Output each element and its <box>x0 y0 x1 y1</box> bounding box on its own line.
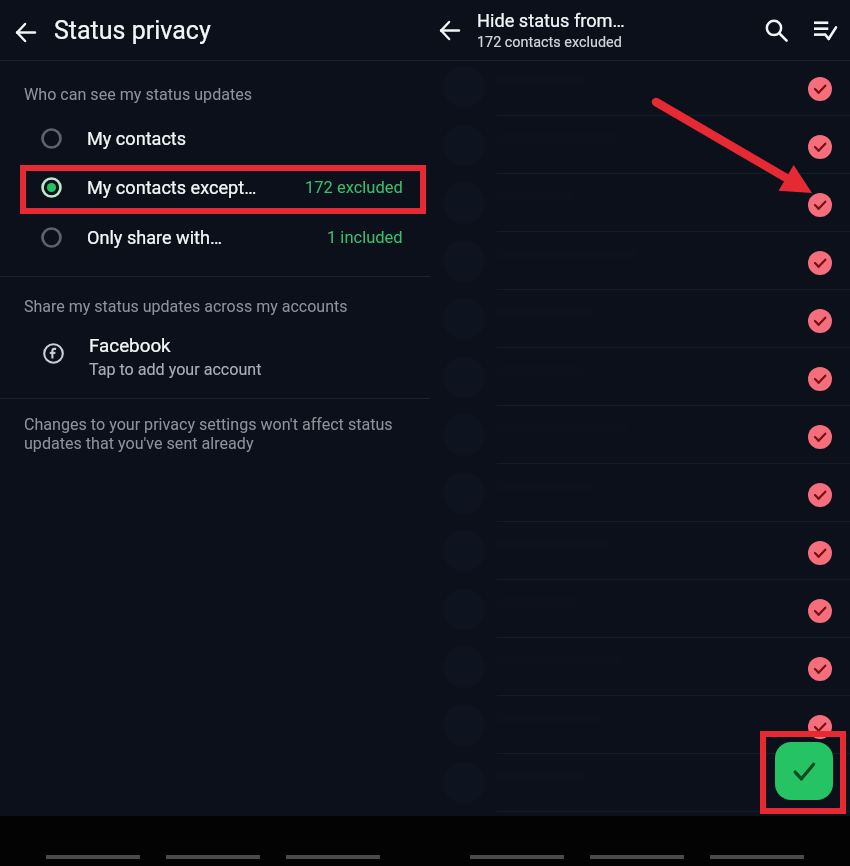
button[interactable]: Done <box>775 742 833 800</box>
staticText: Share my status updates across my accoun… <box>24 297 348 316</box>
button[interactable] <box>430 638 850 696</box>
button[interactable] <box>430 696 850 754</box>
button[interactable] <box>430 290 850 348</box>
button[interactable] <box>430 116 850 174</box>
staticText: Changes to your privacy settings won't a… <box>24 415 396 453</box>
button[interactable] <box>430 754 850 812</box>
button[interactable] <box>430 464 850 522</box>
staticText: Who can see my status updates <box>24 85 253 104</box>
button[interactable]: Select all <box>807 12 843 48</box>
staticText: Only share with… <box>87 227 223 248</box>
button[interactable]: Back <box>436 17 462 43</box>
staticText: My contacts except… <box>87 177 257 198</box>
button[interactable] <box>430 522 850 580</box>
button[interactable]: My contacts except… <box>0 166 430 208</box>
button[interactable] <box>430 406 850 464</box>
button[interactable] <box>430 232 850 290</box>
staticText: 1 included <box>327 228 403 247</box>
button[interactable]: Only share with… <box>0 216 430 258</box>
button[interactable] <box>430 174 850 232</box>
staticText: 172 contacts excluded <box>477 34 622 51</box>
staticText: Facebook <box>89 335 171 357</box>
staticText: Tap to add your account <box>89 360 262 379</box>
staticText: My contacts <box>87 128 187 149</box>
button[interactable] <box>430 580 850 638</box>
button[interactable]: Back <box>12 19 38 45</box>
staticText: 172 excluded <box>305 178 403 197</box>
button[interactable] <box>430 58 850 116</box>
button[interactable]: Search <box>758 12 794 48</box>
staticText: Hide status from… <box>477 10 625 31</box>
staticText: Status privacy <box>54 16 211 45</box>
button[interactable] <box>430 348 850 406</box>
button[interactable]: My contacts <box>0 117 430 159</box>
button[interactable]: Facebook <box>0 329 430 385</box>
